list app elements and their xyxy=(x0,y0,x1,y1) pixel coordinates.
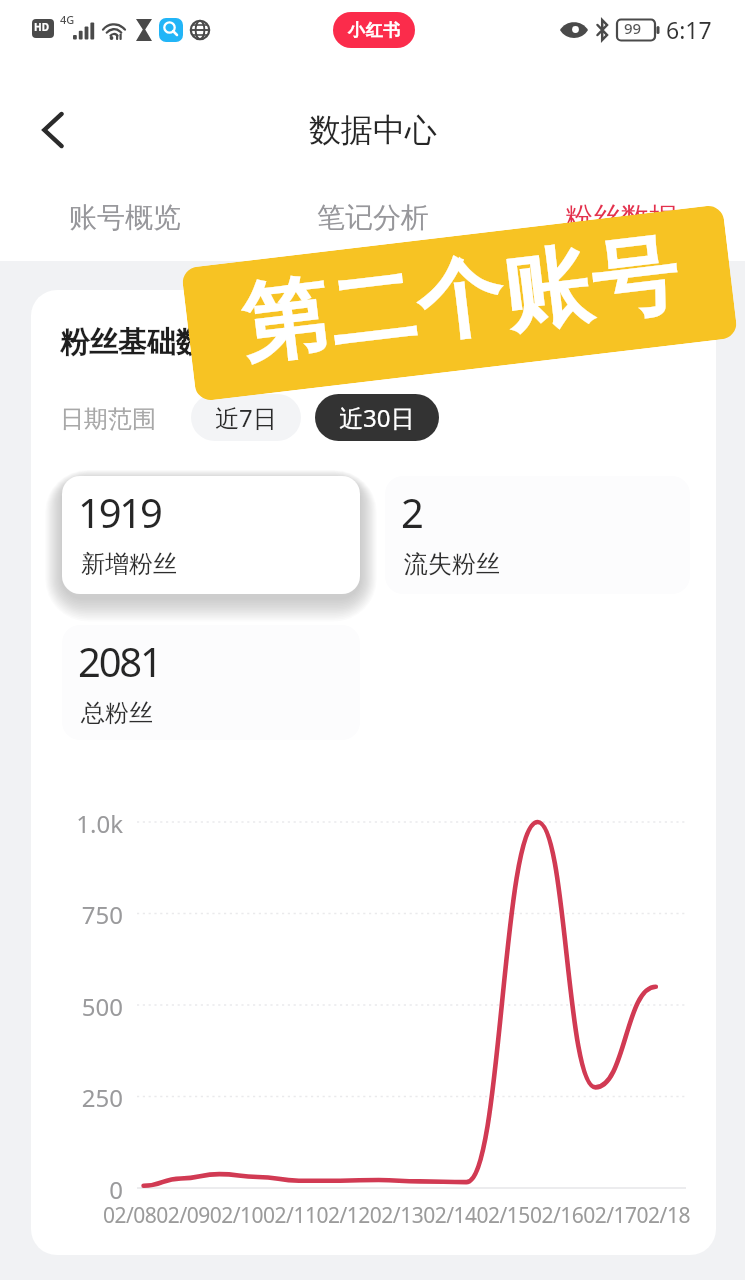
button[interactable]: 2 xyxy=(385,476,690,594)
staticText: 近30日 xyxy=(339,401,415,434)
staticText: 近7日 xyxy=(215,401,277,434)
staticText: HD xyxy=(34,20,49,34)
staticText: 新增粉丝 xyxy=(81,549,177,579)
button[interactable]: 笔记分析 xyxy=(249,183,497,251)
staticText: 250 xyxy=(81,1081,123,1114)
button[interactable]: 近30日 xyxy=(315,394,439,441)
staticText: 数据中心 xyxy=(309,110,437,150)
staticText: 500 xyxy=(81,990,123,1023)
button[interactable]: 近7日 xyxy=(191,394,301,441)
staticText: 1919 xyxy=(78,485,161,539)
staticText: 02/0802/0902/1002/1102/1202/1302/1402/15… xyxy=(103,1201,690,1230)
button[interactable]: 1919 xyxy=(62,476,360,594)
staticText: 小红书 xyxy=(348,20,401,41)
staticText: 笔记分析 xyxy=(317,200,429,235)
button[interactable]: 账号概览 xyxy=(0,183,249,251)
staticText: 99 xyxy=(624,18,642,38)
staticText: 总粉丝 xyxy=(81,698,153,728)
staticText: 日期范围 xyxy=(60,404,156,434)
staticText: 流失粉丝 xyxy=(404,549,500,579)
button[interactable]: 粉丝数据 xyxy=(497,183,745,251)
button[interactable]: Back xyxy=(22,99,84,161)
staticText: 750 xyxy=(81,898,123,931)
staticText: 2 xyxy=(401,485,422,539)
staticText: 第二个账号 xyxy=(235,220,684,380)
staticText: 4G xyxy=(60,12,75,27)
staticText: 粉丝数据 xyxy=(565,200,677,235)
staticText: 0 xyxy=(109,1173,123,1206)
staticText: 1.0k xyxy=(76,807,123,840)
button[interactable]: 2081 xyxy=(62,625,360,740)
staticText: 粉丝基础数据 xyxy=(60,324,234,361)
staticText: 账号概览 xyxy=(69,200,181,235)
staticText: 6:17 xyxy=(666,14,712,45)
staticText: 2081 xyxy=(78,634,161,688)
